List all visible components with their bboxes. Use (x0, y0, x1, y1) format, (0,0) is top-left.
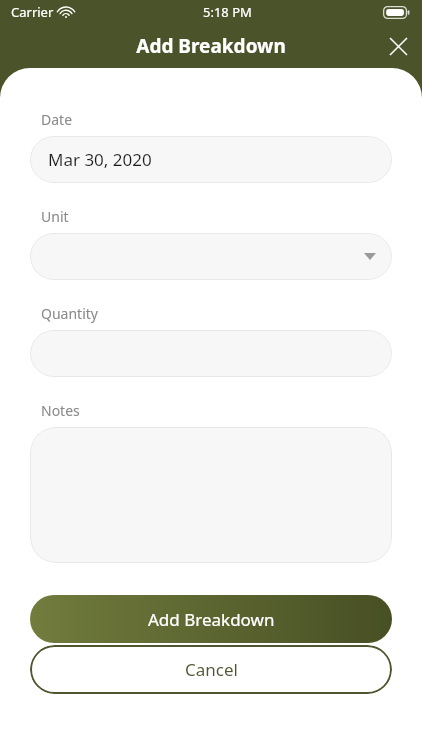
staticText: Cancel (185, 658, 238, 681)
button[interactable]: Select unit (30, 233, 392, 280)
staticText: Add Breakdown (0, 33, 422, 59)
staticText: Notes (41, 401, 80, 420)
staticText: Mar 30, 2020 (48, 148, 152, 171)
staticText: Add Breakdown (148, 608, 275, 631)
button[interactable]: Quantity input (30, 330, 392, 377)
button[interactable]: Close (378, 26, 418, 66)
button[interactable]: Add Breakdown (30, 595, 392, 643)
staticText: Carrier (11, 3, 54, 21)
staticText: 5:18 PM (203, 3, 252, 21)
button[interactable]: Cancel (30, 645, 392, 694)
staticText: Unit (41, 207, 69, 226)
staticText: Quantity (41, 304, 98, 323)
button[interactable]: Mar 30, 2020 (30, 136, 392, 183)
staticText: Date (41, 110, 73, 129)
